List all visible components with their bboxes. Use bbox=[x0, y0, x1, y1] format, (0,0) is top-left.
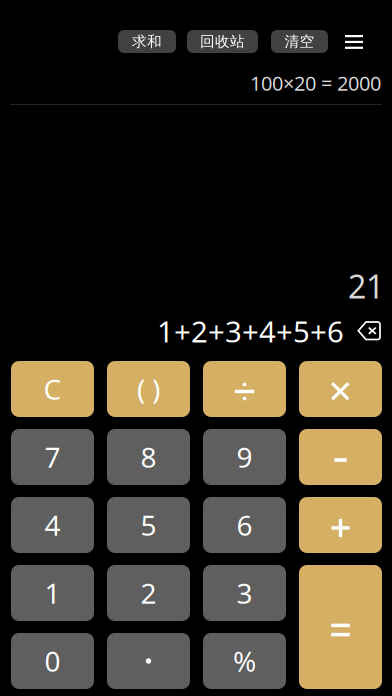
staticText: 9 bbox=[236, 438, 252, 476]
staticText: 6 bbox=[236, 506, 252, 544]
staticText: 求和 bbox=[132, 32, 162, 50]
button[interactable]: Decimal point bbox=[107, 633, 190, 689]
staticText: 5 bbox=[140, 506, 156, 544]
button[interactable]: 回收站 bbox=[187, 30, 258, 53]
button[interactable]: 9 bbox=[203, 429, 286, 485]
staticText: % bbox=[233, 642, 256, 680]
button[interactable]: Backspace bbox=[357, 321, 381, 341]
staticText: 1 bbox=[44, 574, 60, 612]
staticText: 4 bbox=[44, 506, 60, 544]
staticText: 0 bbox=[44, 642, 60, 680]
staticText: 回收站 bbox=[200, 32, 245, 50]
button[interactable]: Minus bbox=[299, 429, 382, 485]
staticText: ( ) bbox=[137, 370, 160, 408]
staticText: 100×20 = 2000 bbox=[250, 70, 381, 96]
button[interactable]: Multiply bbox=[299, 361, 382, 417]
button[interactable]: Equals bbox=[299, 565, 382, 689]
staticText: 清空 bbox=[284, 32, 314, 50]
button[interactable]: 5 bbox=[107, 497, 190, 553]
staticText: 8 bbox=[140, 438, 156, 476]
button[interactable]: 3 bbox=[203, 565, 286, 621]
button[interactable]: Divide bbox=[203, 361, 286, 417]
button[interactable]: 6 bbox=[203, 497, 286, 553]
button[interactable]: 7 bbox=[11, 429, 94, 485]
button[interactable]: 8 bbox=[107, 429, 190, 485]
staticText: C bbox=[43, 370, 61, 408]
button[interactable]: 1 bbox=[11, 565, 94, 621]
button[interactable]: Menu bbox=[336, 27, 372, 57]
button[interactable]: C bbox=[11, 361, 94, 417]
button[interactable]: 4 bbox=[11, 497, 94, 553]
button[interactable]: Plus bbox=[299, 497, 382, 553]
staticText: 3 bbox=[236, 574, 252, 612]
button[interactable]: 0 bbox=[11, 633, 94, 689]
staticText: 2 bbox=[140, 574, 156, 612]
button[interactable]: % bbox=[203, 633, 286, 689]
button[interactable]: 清空 bbox=[271, 30, 328, 53]
staticText: 1+2+3+4+5+6 bbox=[157, 311, 344, 350]
button[interactable]: 2 bbox=[107, 565, 190, 621]
button[interactable]: ( ) bbox=[107, 361, 190, 417]
staticText: 21 bbox=[348, 265, 384, 307]
button[interactable]: 求和 bbox=[118, 30, 176, 53]
staticText: 7 bbox=[44, 438, 60, 476]
